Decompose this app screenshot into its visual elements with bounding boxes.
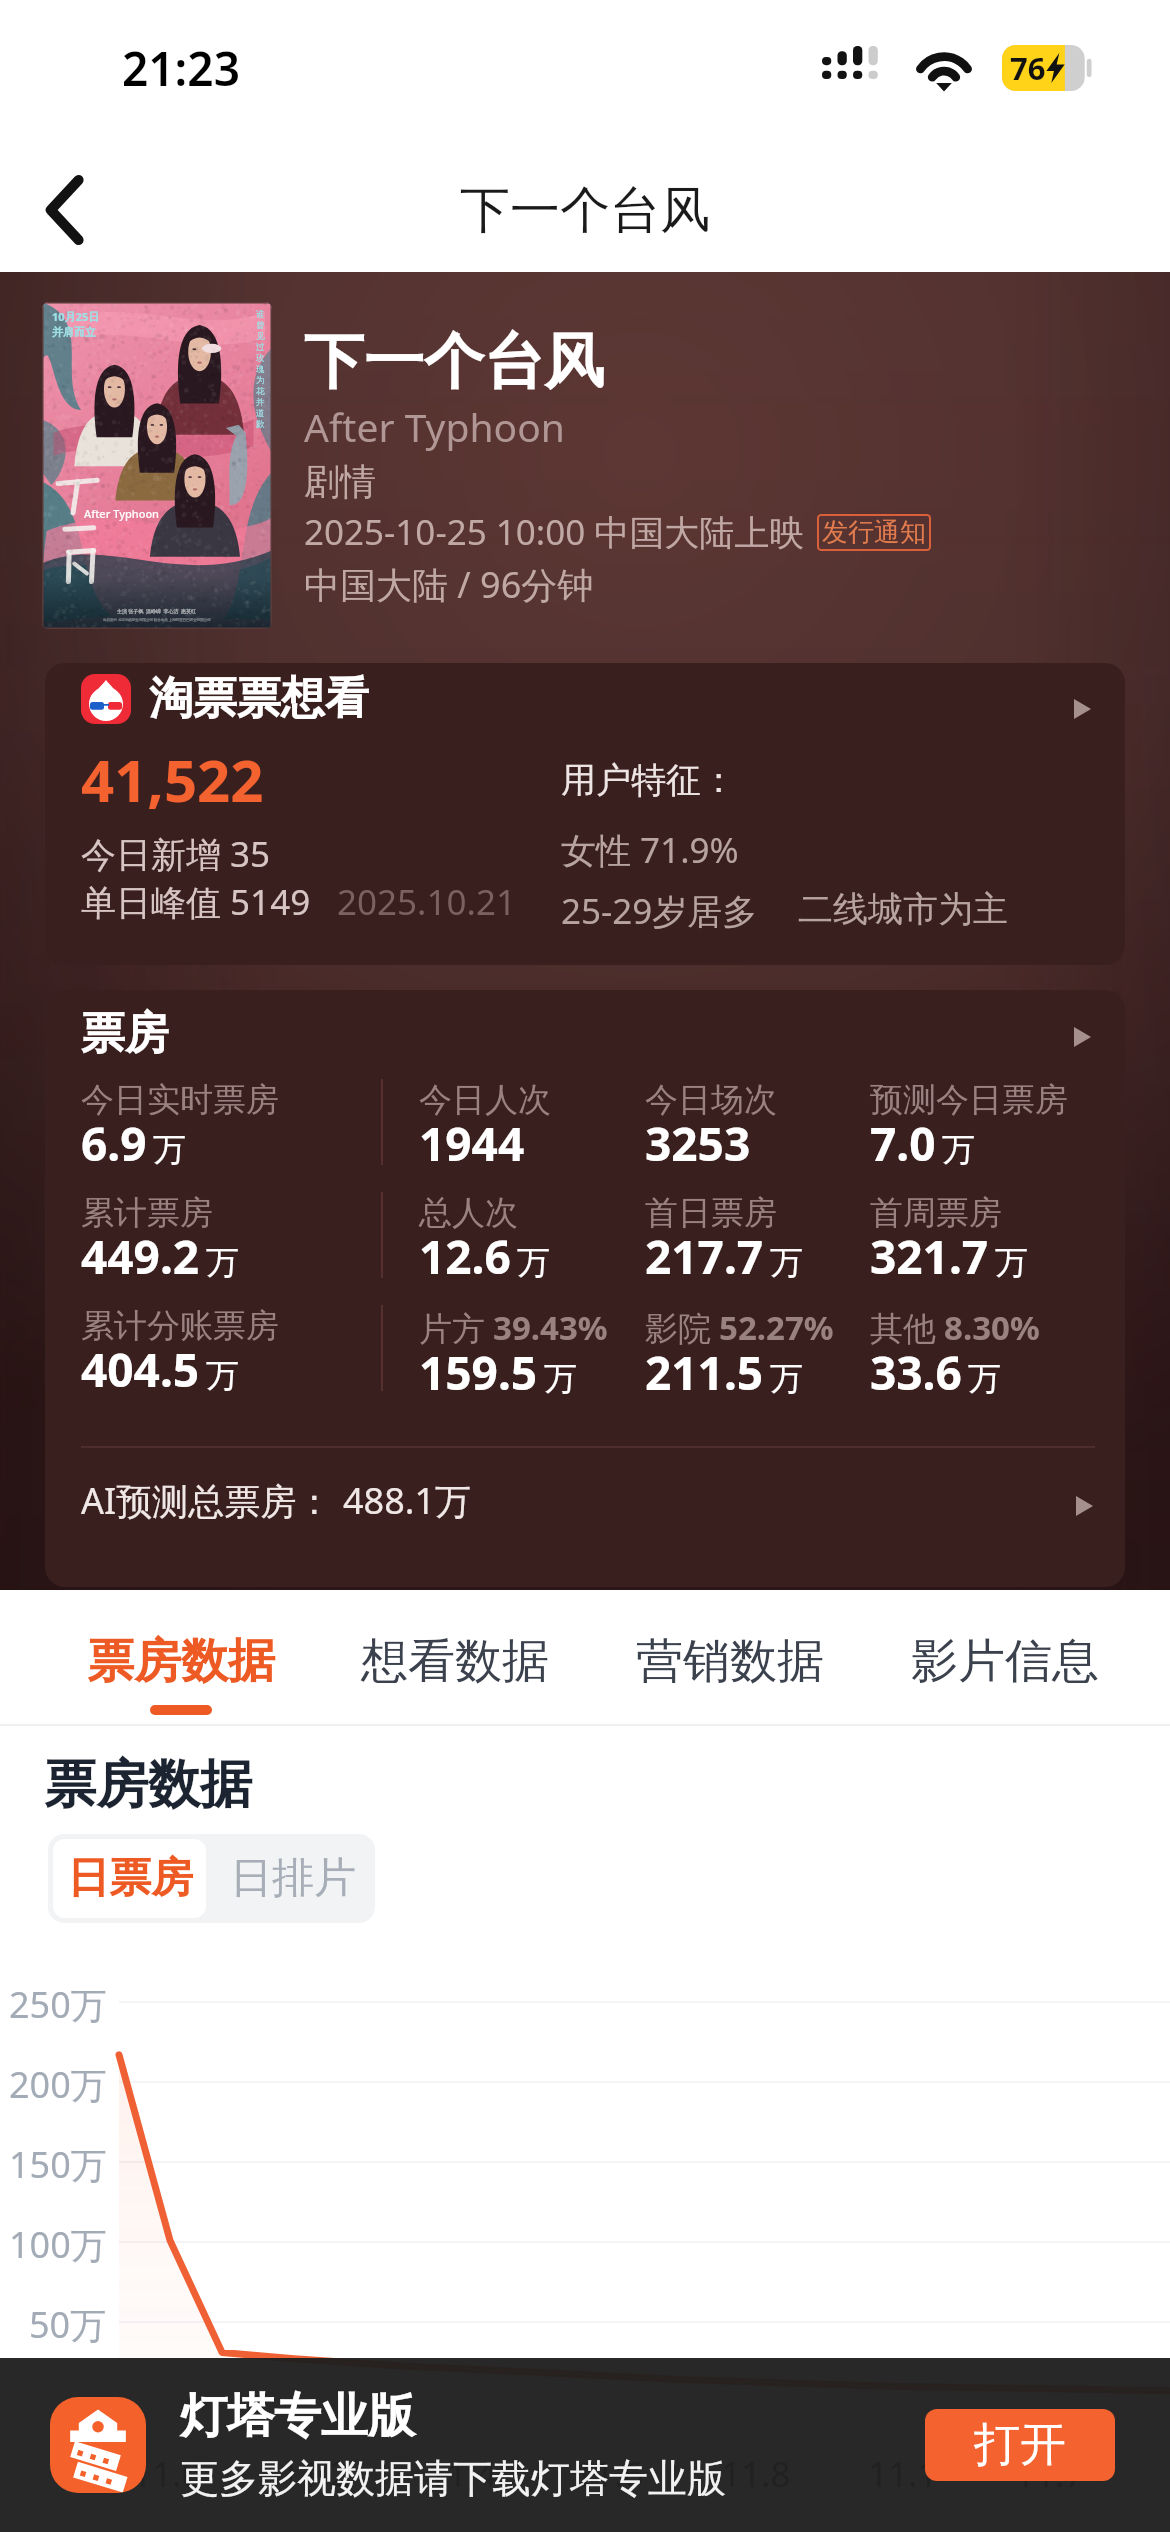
staticText: 歉 (256, 419, 265, 430)
staticText: 21:23 (122, 37, 240, 100)
staticText: 票房数据 (44, 1752, 252, 1818)
staticText: 11.8 (721, 2450, 791, 2498)
button[interactable]: 影片信息 (867, 1622, 1142, 1724)
staticText: 万 (968, 1358, 1001, 1400)
button[interactable]: 日排片 (216, 1839, 370, 1918)
staticText: 瑰 (256, 364, 265, 375)
staticText: 营销数据 (636, 1632, 824, 1691)
staticText: 8.30% (944, 1305, 1040, 1350)
staticText: 万 (544, 1358, 577, 1400)
staticText: 33.6 (870, 1341, 962, 1404)
staticText: 万 (942, 1129, 975, 1171)
staticText: 万 (206, 1355, 239, 1397)
staticText: 万 (770, 1358, 803, 1400)
staticText: AI预测总票房： (81, 1476, 333, 1525)
staticText: 2025-10-25 10:00 中国大陆上映 (304, 508, 805, 556)
staticText: 万 (153, 1129, 186, 1171)
staticText: 想看数据 (361, 1632, 549, 1691)
staticText: 今日人次 (419, 1079, 551, 1121)
button[interactable]: 打开 (925, 2409, 1115, 2481)
staticText: 灯塔专业版 (180, 2387, 415, 2446)
staticText: 用户特征： (561, 758, 736, 802)
staticText: 其他 (870, 1308, 936, 1350)
staticText: 52.27% (719, 1305, 834, 1350)
staticText: 打开 (974, 2416, 1066, 2474)
button[interactable]: 淘票票想看 (45, 663, 1125, 965)
staticText: 并 (256, 397, 265, 408)
staticText: 11.1 (868, 2450, 938, 2498)
staticText: 出品发行 北京光线影业有限公司 联合出品 上海阿里巴巴影业有限公司 (103, 617, 211, 622)
staticText: 下一个台风 (304, 324, 604, 400)
staticText: 2025.10.21 (337, 878, 516, 926)
staticText: 11.6 (574, 2450, 644, 2498)
staticText: 万 (995, 1242, 1028, 1284)
staticText: 11.0 (132, 2450, 202, 2498)
button[interactable]: Taopiaopiao wishlist details (1059, 686, 1105, 732)
staticText: 万 (517, 1242, 550, 1284)
button[interactable]: 日票房 (53, 1839, 206, 1918)
staticText: 11.2 (280, 2450, 350, 2498)
staticText: 主演 张子枫 温峥嵘 李心洁 惠英红 (117, 608, 197, 615)
staticText: 淘票票想看 (149, 671, 369, 726)
staticText: 万 (770, 1242, 803, 1284)
button[interactable]: 想看数据 (318, 1622, 592, 1724)
button[interactable]: Back (0, 148, 130, 272)
staticText: 1944 (419, 1112, 525, 1175)
staticText: 发行通知 (822, 516, 926, 549)
button[interactable]: 营销数据 (592, 1622, 867, 1724)
staticText: 曾 (256, 320, 265, 331)
staticText: 女性 71.9% (561, 826, 739, 874)
staticText: 211.5 (645, 1341, 764, 1404)
staticText: 单日峰值 5149 (81, 878, 311, 926)
button[interactable]: 票房 (45, 990, 1125, 1587)
staticText: 250万 (9, 1980, 107, 2029)
staticText: 404.5 (81, 1338, 200, 1401)
staticText: 11.7 (1015, 2450, 1085, 2498)
staticText: 玫 (256, 353, 265, 364)
staticText: 6.9 (81, 1112, 147, 1175)
staticText: 41,522 (81, 740, 264, 819)
staticText: 二线城市为主 (798, 887, 1008, 931)
staticText: 中国大陆 / 96分钟 (304, 560, 594, 609)
staticText: 今日新增 35 (81, 830, 271, 878)
staticText: After Typhoon (304, 400, 565, 453)
staticText: 剧情 (304, 459, 376, 504)
staticText: 3253 (645, 1112, 751, 1175)
staticText: 见 (256, 331, 265, 342)
staticText: 150万 (9, 2140, 107, 2189)
button[interactable]: 票房数据 (44, 1622, 318, 1724)
button[interactable]: Box office details (1059, 1014, 1105, 1060)
button[interactable]: 发行通知 (817, 514, 931, 551)
staticText: 321.7 (870, 1225, 989, 1288)
staticText: 更多影视数据请下载灯塔专业版 (180, 2454, 726, 2503)
staticText: 25-29岁居多 (561, 887, 758, 935)
staticText: 票房数据 (87, 1632, 275, 1691)
staticText: 39.43% (493, 1305, 608, 1350)
staticText: 今日实时票房 (81, 1079, 279, 1121)
staticText: 12.6 (419, 1225, 511, 1288)
staticText: 日票房 (67, 1852, 193, 1905)
staticText: 票房 (81, 1006, 169, 1061)
staticText: 100万 (9, 2220, 107, 2269)
staticText: 首日票房 (645, 1192, 777, 1234)
staticText: 159.5 (419, 1341, 538, 1404)
staticText: After Typhoon (84, 506, 159, 521)
staticText: 50万 (29, 2300, 107, 2349)
staticText: 为 (256, 375, 265, 386)
staticText: 217.7 (645, 1225, 764, 1288)
staticText: 片方 (419, 1308, 485, 1350)
staticText: 200万 (9, 2060, 107, 2109)
staticText: 首周票房 (870, 1192, 1002, 1234)
staticText: 过 (256, 342, 265, 353)
staticText: 影片信息 (911, 1632, 1099, 1691)
staticText: 累计分账票房 (81, 1305, 279, 1347)
staticText: 累计票房 (81, 1192, 213, 1234)
button[interactable]: AI forecast details (1061, 1483, 1107, 1529)
staticText: 道 (256, 408, 265, 419)
staticText: 449.2 (81, 1225, 200, 1288)
staticText: 总人次 (419, 1192, 518, 1234)
staticText: 万 (206, 1242, 239, 1284)
staticText: 下一个台风 (460, 179, 710, 242)
staticText: 谁 (256, 309, 265, 320)
staticText: 76 (1010, 47, 1046, 89)
